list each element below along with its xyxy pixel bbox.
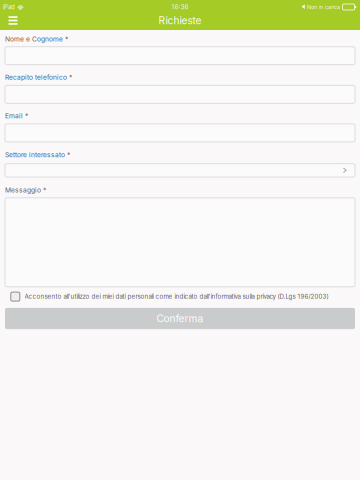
- staticText: 16:36: [171, 3, 188, 11]
- staticText: Settore interessato *: [5, 151, 70, 159]
- button[interactable]: Conferma: [5, 308, 355, 329]
- staticText: Nome e Cognome *: [5, 35, 68, 43]
- button[interactable]: [5, 164, 355, 177]
- button[interactable]: Menu: [0, 12, 26, 29]
- staticText: Acconsento all'utilizzo dei miei dati pe…: [24, 293, 328, 300]
- staticText: Non in carica: [307, 4, 340, 10]
- staticText: Conferma: [156, 312, 203, 325]
- staticText: Recapito telefonico *: [5, 73, 72, 81]
- button[interactable]: Acconsento all'utilizzo dei miei dati pe…: [0, 292, 360, 301]
- staticText: iPad: [3, 3, 15, 11]
- staticText: Richieste: [158, 14, 201, 27]
- staticText: Email *: [5, 112, 28, 120]
- staticText: Messaggio *: [5, 186, 46, 194]
